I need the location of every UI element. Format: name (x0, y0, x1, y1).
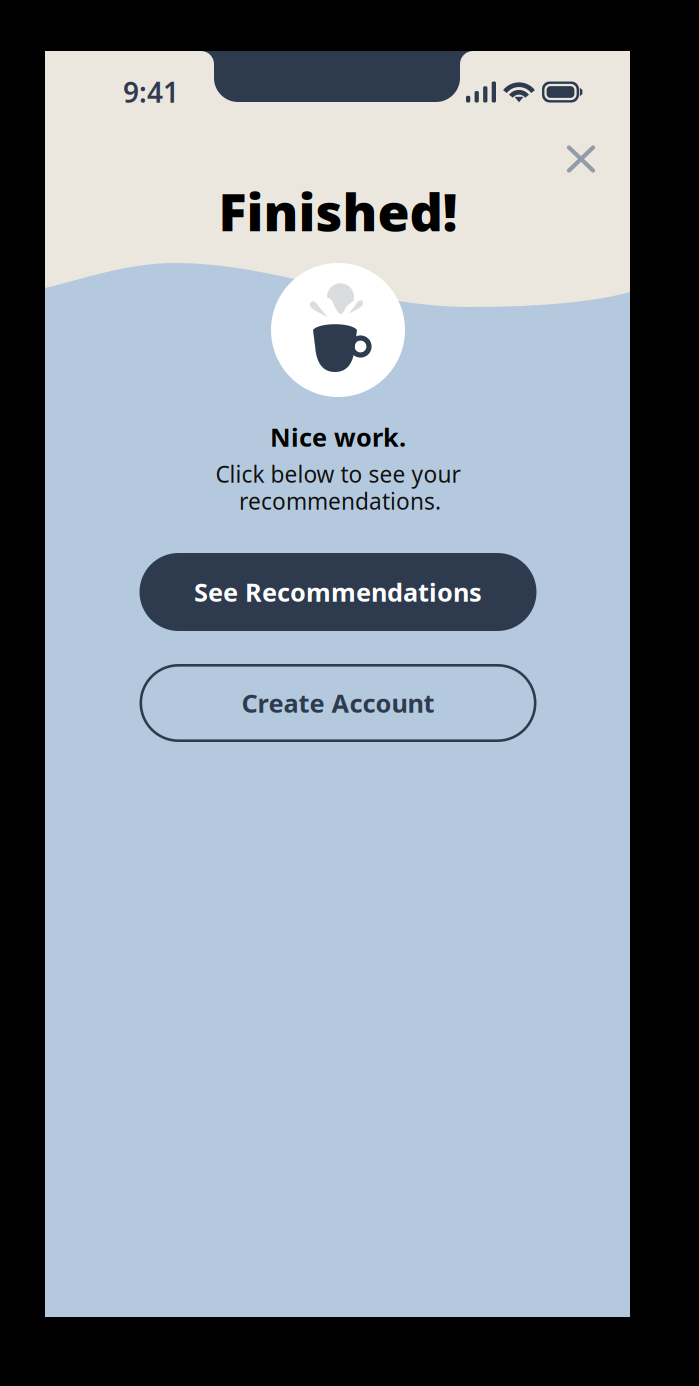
staticText: 9:41 (123, 73, 179, 111)
staticText: See Recommendations (194, 575, 482, 609)
button[interactable]: Close (553, 131, 609, 186)
staticText: Nice work. (270, 420, 406, 454)
button[interactable]: See Recommendations (139, 553, 536, 631)
staticText: Finished! (218, 176, 457, 246)
staticText: recommendations. (239, 486, 441, 516)
staticText: Click below to see your (215, 459, 460, 489)
button[interactable]: Create Account (139, 664, 536, 742)
staticText: Create Account (241, 686, 434, 720)
